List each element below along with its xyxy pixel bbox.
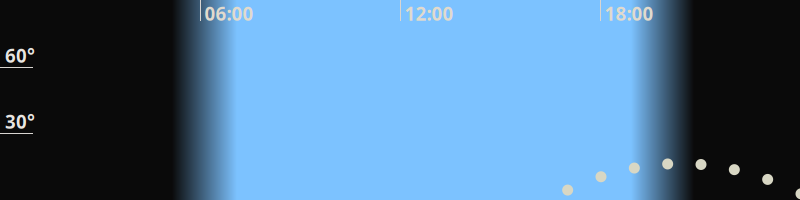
staticText: 18:00 xyxy=(604,1,653,26)
staticText: 06:00 xyxy=(204,1,253,26)
staticText: 30° xyxy=(5,109,35,134)
staticText: 12:00 xyxy=(404,1,453,26)
staticText: 60° xyxy=(5,43,35,68)
